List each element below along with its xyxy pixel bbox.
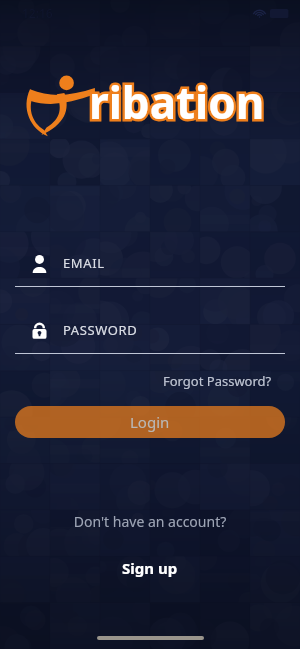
staticText: PASSWORD — [63, 321, 138, 339]
button[interactable]: Password — [15, 307, 285, 354]
button[interactable]: Forgot Password? — [163, 368, 272, 394]
button[interactable]: Email — [15, 240, 285, 287]
staticText: Don't have an account? — [0, 512, 300, 531]
staticText: ribation — [89, 72, 265, 132]
staticText: Login — [130, 412, 170, 432]
staticText: EMAIL — [63, 254, 105, 272]
button[interactable]: Sign up — [104, 553, 196, 583]
other: Email — [15, 240, 63, 286]
staticText: ribation — [89, 72, 265, 132]
button[interactable]: Login — [15, 406, 285, 438]
other: Password — [15, 307, 63, 353]
